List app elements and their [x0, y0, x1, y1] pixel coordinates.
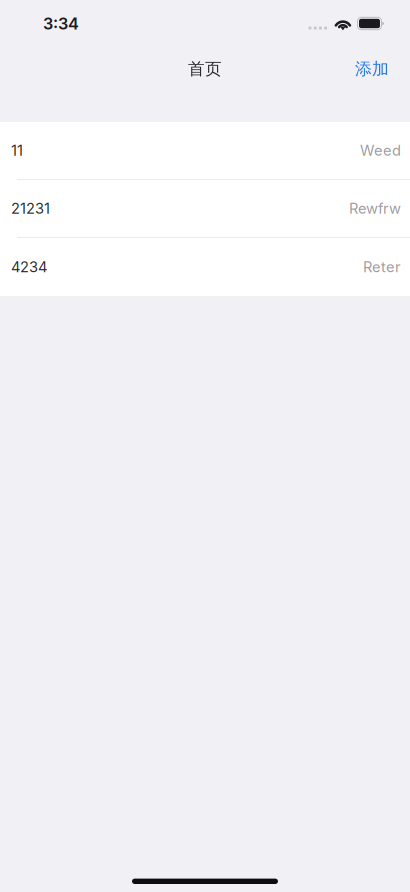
staticText: 添加 — [355, 58, 389, 80]
staticText: 首页 — [188, 59, 222, 79]
staticText: 21231 — [11, 200, 50, 217]
staticText: 4234 — [11, 258, 47, 276]
button[interactable]: 21231 — [0, 180, 410, 238]
button[interactable]: 4234 — [0, 238, 410, 296]
button[interactable]: 11 — [0, 122, 410, 180]
button[interactable]: 添加 — [347, 51, 397, 87]
staticText: Reter — [363, 258, 401, 276]
staticText: 3:34 — [43, 14, 79, 33]
staticText: Rewfrw — [349, 200, 401, 217]
staticText: 11 — [11, 142, 23, 159]
staticText: Weed — [360, 142, 401, 159]
